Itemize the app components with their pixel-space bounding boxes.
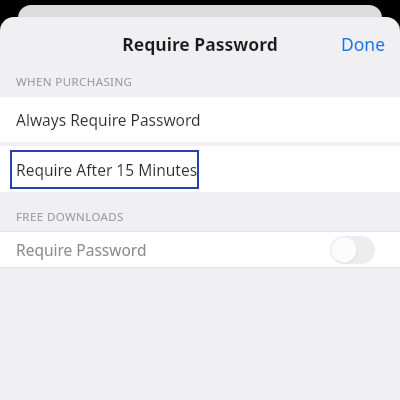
staticText: Require Password	[16, 239, 330, 260]
button[interactable]: Always Require Password	[0, 97, 400, 142]
button[interactable]: Require After 15 Minutes	[0, 146, 400, 192]
staticText: WHEN PURCHASING	[16, 74, 133, 90]
button[interactable]: Require Password	[0, 232, 400, 267]
staticText: Require After 15 Minutes	[16, 159, 198, 180]
button[interactable]: Done	[327, 22, 400, 66]
staticText: Done	[341, 32, 386, 56]
staticText: FREE DOWNLOADS	[16, 209, 124, 225]
staticText: Always Require Password	[16, 109, 201, 130]
staticText: Require Password	[122, 32, 278, 56]
button[interactable]: Require Password toggle, off	[330, 236, 375, 264]
